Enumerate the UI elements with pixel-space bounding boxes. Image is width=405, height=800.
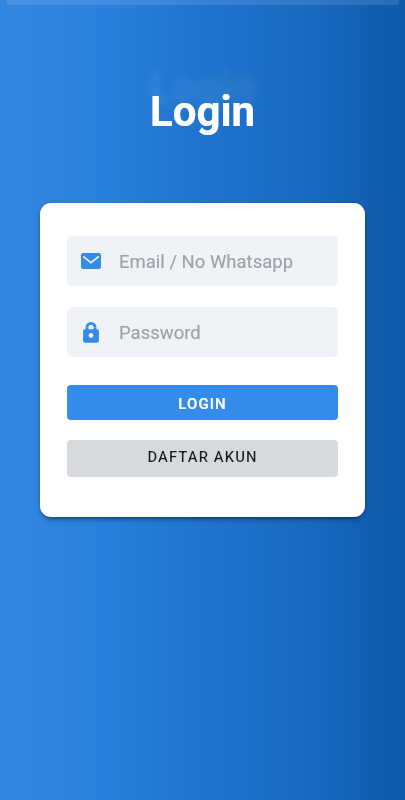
staticText: DAFTAR AKUN [147, 448, 258, 465]
button[interactable]: Password [67, 307, 338, 357]
staticText: Email / No Whatsapp [119, 251, 294, 273]
other: Email [81, 253, 101, 269]
button[interactable]: DAFTAR AKUN [67, 440, 338, 477]
other: Password [81, 322, 101, 343]
staticText: LOGIN [178, 395, 227, 413]
button[interactable]: LOGIN [67, 385, 338, 420]
button[interactable]: Email [67, 236, 338, 286]
staticText: Password [119, 322, 201, 344]
staticText: Login [150, 87, 256, 136]
